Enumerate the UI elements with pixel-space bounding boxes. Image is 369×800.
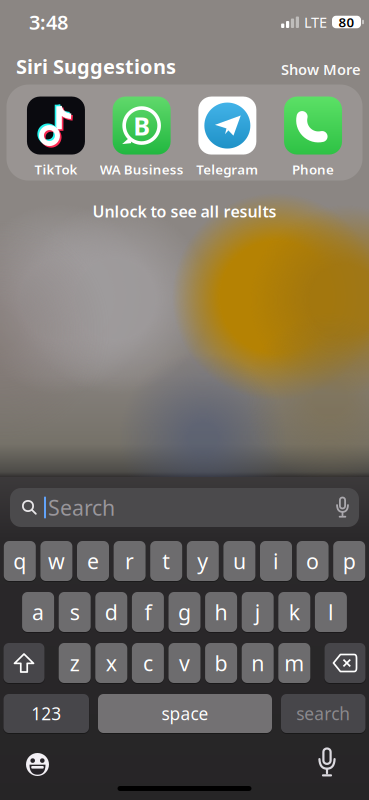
- button[interactable]: f: [132, 592, 164, 632]
- button[interactable]: Emoji: [26, 753, 49, 776]
- button[interactable]: e: [77, 541, 109, 581]
- button[interactable]: h: [205, 592, 237, 632]
- staticText: o: [306, 547, 319, 575]
- staticText: x: [106, 649, 117, 677]
- staticText: 123: [31, 702, 61, 725]
- button[interactable]: p: [333, 541, 365, 581]
- staticText: c: [143, 649, 153, 677]
- staticText: s: [70, 598, 80, 626]
- staticText: Telegram: [196, 161, 258, 178]
- staticText: B: [133, 109, 150, 142]
- staticText: Phone: [292, 161, 334, 178]
- staticText: TikTok: [34, 161, 77, 178]
- staticText: d: [105, 598, 118, 626]
- button[interactable]: Voice search: [336, 497, 349, 517]
- button[interactable]: w: [40, 541, 72, 581]
- button[interactable]: search: [281, 694, 365, 733]
- staticText: Search: [48, 493, 115, 522]
- button[interactable]: k: [278, 592, 310, 632]
- staticText: Show More: [281, 59, 361, 79]
- staticText: e: [87, 547, 99, 575]
- button[interactable]: t: [150, 541, 182, 581]
- staticText: u: [233, 547, 246, 575]
- button[interactable]: TikTok: [13, 97, 99, 178]
- staticText: Unlock to see all results: [92, 201, 276, 222]
- button[interactable]: m: [278, 643, 310, 683]
- staticText: b: [215, 649, 228, 677]
- button[interactable]: b: [205, 643, 237, 683]
- button[interactable]: u: [223, 541, 255, 581]
- staticText: i: [273, 547, 279, 575]
- button[interactable]: r: [114, 541, 146, 581]
- button[interactable]: 123: [3, 694, 89, 733]
- staticText: LTE: [304, 12, 327, 32]
- staticText: WA Business: [100, 161, 184, 178]
- staticText: 3:48: [29, 9, 68, 35]
- staticText: j: [255, 598, 261, 626]
- staticText: g: [178, 598, 191, 626]
- staticText: k: [289, 598, 300, 626]
- staticText: m: [284, 649, 304, 677]
- button[interactable]: i: [260, 541, 292, 581]
- button[interactable]: space: [98, 694, 272, 733]
- staticText: n: [251, 649, 264, 677]
- button[interactable]: Show More: [281, 53, 361, 79]
- staticText: search: [296, 702, 350, 725]
- button[interactable]: j: [242, 592, 274, 632]
- button[interactable]: d: [95, 592, 127, 632]
- staticText: h: [215, 598, 228, 626]
- button[interactable]: B: [99, 97, 184, 178]
- button[interactable]: c: [132, 643, 164, 683]
- staticText: Siri Suggestions: [16, 53, 176, 80]
- staticText: t: [162, 547, 170, 575]
- button[interactable]: Shift: [3, 643, 44, 683]
- staticText: r: [125, 547, 134, 575]
- staticText: q: [13, 547, 26, 575]
- button[interactable]: q: [4, 541, 36, 581]
- button[interactable]: x: [95, 643, 127, 683]
- button[interactable]: l: [315, 592, 347, 632]
- staticText: 80: [338, 13, 354, 31]
- staticText: y: [197, 547, 208, 575]
- staticText: space: [161, 702, 208, 725]
- button[interactable]: Phone: [270, 97, 356, 178]
- button[interactable]: y: [187, 541, 219, 581]
- button[interactable]: v: [168, 643, 200, 683]
- staticText: a: [32, 598, 44, 626]
- button[interactable]: Delete: [324, 643, 365, 683]
- staticText: z: [70, 649, 80, 677]
- staticText: f: [144, 598, 151, 626]
- button[interactable]: o: [297, 541, 329, 581]
- staticText: p: [343, 547, 356, 575]
- button[interactable]: g: [168, 592, 200, 632]
- button[interactable]: Telegram: [184, 97, 270, 178]
- staticText: v: [179, 649, 190, 677]
- button[interactable]: z: [59, 643, 91, 683]
- button[interactable]: Dictation: [318, 748, 336, 776]
- button[interactable]: Search: [10, 488, 359, 527]
- button[interactable]: a: [22, 592, 54, 632]
- button[interactable]: n: [242, 643, 274, 683]
- staticText: l: [328, 598, 334, 626]
- button[interactable]: s: [59, 592, 91, 632]
- staticText: w: [48, 547, 65, 575]
